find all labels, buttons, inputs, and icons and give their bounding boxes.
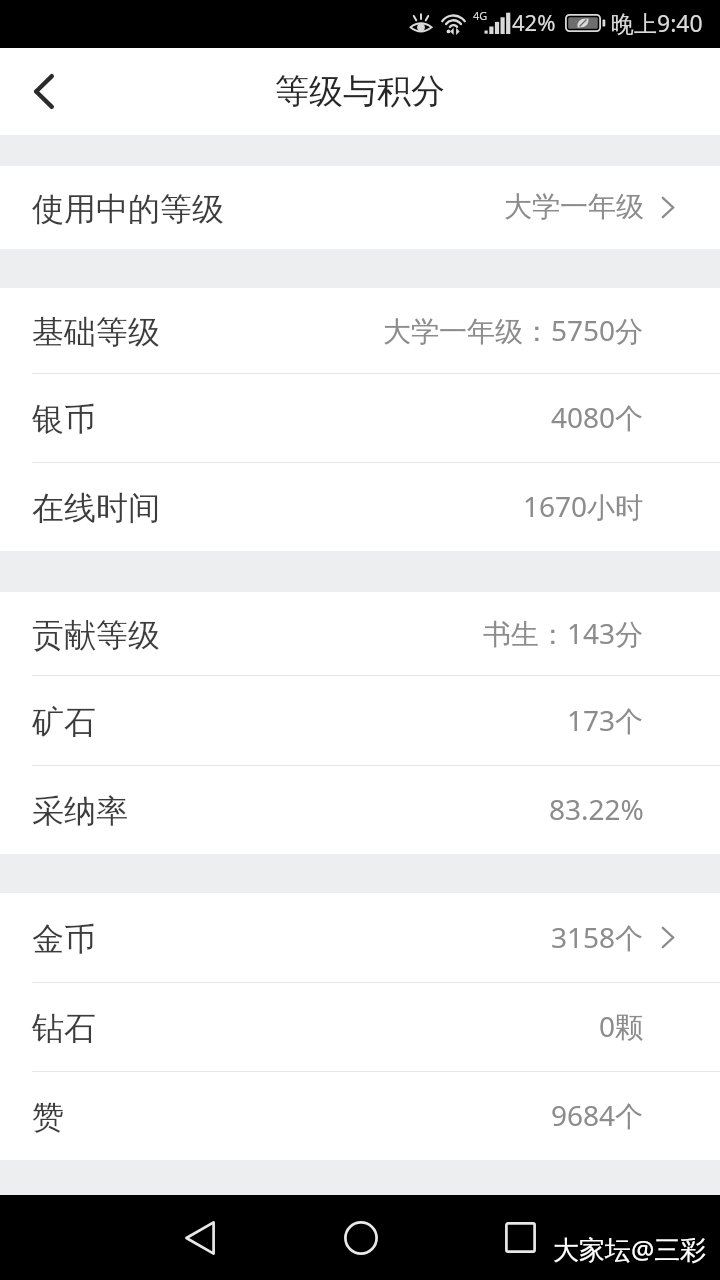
staticText: 3158个 xyxy=(551,918,644,956)
staticText: 基础等级 xyxy=(32,312,160,352)
staticText: 赞 xyxy=(32,1097,64,1137)
button[interactable]: 钻石 xyxy=(0,983,720,1071)
staticText: 矿石 xyxy=(32,702,96,742)
button[interactable]: 在线时间 xyxy=(0,463,720,551)
button[interactable]: 贡献等级 xyxy=(0,592,720,675)
button[interactable]: Recents xyxy=(498,1218,543,1257)
staticText: 在线时间 xyxy=(32,488,160,528)
staticText: 书生：143分 xyxy=(483,614,644,652)
staticText: 金币 xyxy=(32,919,96,959)
staticText: 大学一年级 xyxy=(504,189,644,224)
button[interactable]: 使用中的等级 xyxy=(0,166,720,249)
button[interactable]: 金币 xyxy=(0,893,720,982)
button[interactable]: 采纳率 xyxy=(0,766,720,854)
staticText: 等级与积分 xyxy=(275,70,445,113)
staticText: 钻石 xyxy=(32,1008,96,1048)
button[interactable]: 基础等级 xyxy=(0,288,720,373)
staticText: 1670小时 xyxy=(523,487,644,525)
staticText: 83.22% xyxy=(549,790,644,828)
button[interactable]: Home xyxy=(338,1218,383,1257)
button[interactable]: 银币 xyxy=(0,374,720,462)
staticText: 采纳率 xyxy=(32,791,128,831)
staticText: 173个 xyxy=(567,701,644,739)
button[interactable]: Back xyxy=(0,48,88,135)
button[interactable]: 赞 xyxy=(0,1072,720,1160)
staticText: 大家坛@三彩 xyxy=(553,1231,707,1267)
staticText: 4G xyxy=(473,8,488,23)
staticText: 4080个 xyxy=(551,398,644,436)
staticText: 使用中的等级 xyxy=(32,189,224,229)
staticText: 大学一年级：5750分 xyxy=(383,311,644,349)
staticText: 42% xyxy=(512,7,556,37)
staticText: 晚上9:40 xyxy=(611,7,703,38)
staticText: 0颗 xyxy=(599,1007,644,1045)
staticText: 银币 xyxy=(32,399,96,439)
staticText: 9684个 xyxy=(551,1096,644,1134)
button[interactable]: Back xyxy=(177,1218,222,1257)
staticText: 贡献等级 xyxy=(32,615,160,655)
button[interactable]: 矿石 xyxy=(0,676,720,765)
